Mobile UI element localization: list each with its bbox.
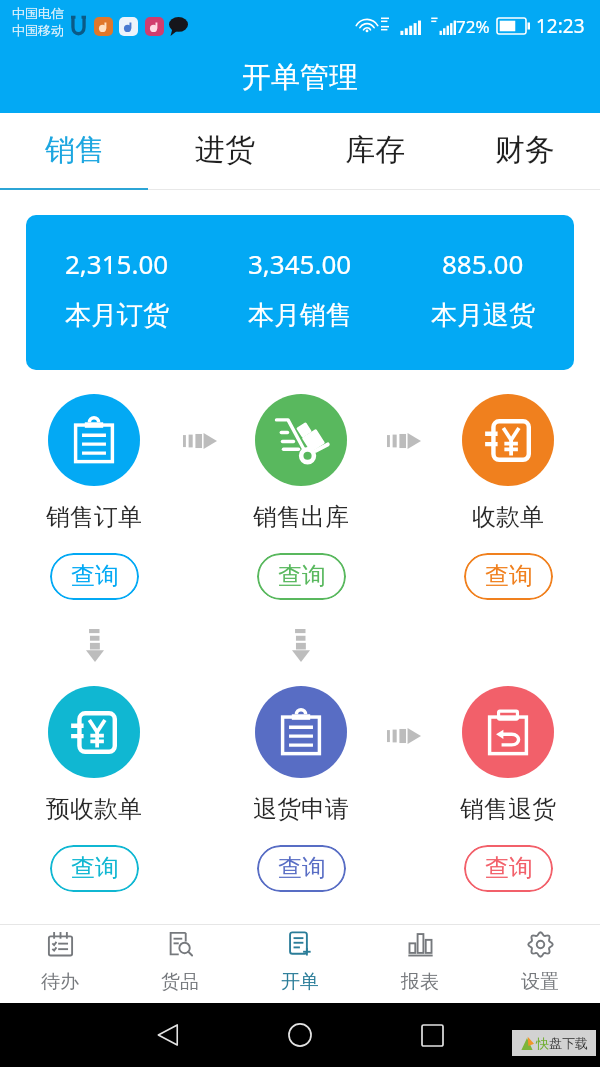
button[interactable]: Recents bbox=[410, 1013, 454, 1057]
staticText: 2,315.00 bbox=[65, 246, 169, 281]
staticText: 3,345.00 bbox=[248, 246, 352, 281]
button[interactable]: 财务 bbox=[450, 113, 600, 190]
button[interactable]: 销售出库 bbox=[225, 394, 377, 600]
staticText: 12:23 bbox=[536, 13, 585, 39]
button[interactable]: 销售订单 bbox=[18, 394, 170, 600]
button[interactable]: 查询 bbox=[464, 845, 553, 892]
staticText: 盘下载 bbox=[549, 1035, 588, 1051]
staticText: 销售订单 bbox=[46, 502, 142, 532]
staticText: 查询 bbox=[485, 561, 533, 591]
staticText: 中国电信 bbox=[12, 5, 64, 21]
staticText: 收款单 bbox=[472, 502, 544, 532]
button[interactable]: 货品 bbox=[120, 924, 240, 1003]
staticText: 查询 bbox=[485, 853, 533, 883]
button[interactable]: 待办 bbox=[0, 924, 120, 1003]
staticText: 设置 bbox=[521, 970, 559, 994]
staticText: 查询 bbox=[71, 561, 119, 591]
button[interactable]: 2,315.00 bbox=[26, 215, 574, 370]
staticText: 销售出库 bbox=[253, 502, 349, 532]
button[interactable]: 进货 bbox=[150, 113, 300, 190]
staticText: 开单 bbox=[281, 970, 319, 994]
staticText: 销售退货 bbox=[460, 794, 556, 824]
button[interactable]: 设置 bbox=[480, 924, 600, 1003]
staticText: 72% bbox=[456, 15, 490, 38]
button[interactable]: 销售退货 bbox=[432, 686, 584, 892]
button[interactable]: 退货申请 bbox=[225, 686, 377, 892]
staticText: 查询 bbox=[71, 853, 119, 883]
button[interactable]: 查询 bbox=[257, 553, 346, 600]
button[interactable]: 收款单 bbox=[432, 394, 584, 600]
staticText: 库存 bbox=[345, 131, 405, 169]
staticText: 销售 bbox=[45, 131, 105, 169]
staticText: 快 bbox=[536, 1035, 549, 1051]
button[interactable]: 查询 bbox=[50, 553, 139, 600]
staticText: 报表 bbox=[401, 970, 439, 994]
staticText: 本月销售 bbox=[248, 299, 352, 332]
button[interactable]: 查询 bbox=[257, 845, 346, 892]
button[interactable]: 库存 bbox=[300, 113, 450, 190]
button[interactable]: 销售 bbox=[0, 113, 150, 190]
staticText: 预收款单 bbox=[46, 794, 142, 824]
staticText: 待办 bbox=[41, 970, 79, 994]
staticText: 进货 bbox=[195, 131, 255, 169]
button[interactable]: 查询 bbox=[464, 553, 553, 600]
button[interactable]: 报表 bbox=[360, 924, 480, 1003]
staticText: 查询 bbox=[278, 853, 326, 883]
staticText: 查询 bbox=[278, 561, 326, 591]
button[interactable]: 开单 bbox=[240, 924, 360, 1003]
button[interactable]: Back bbox=[146, 1013, 190, 1057]
staticText: 本月退货 bbox=[431, 299, 535, 332]
staticText: 财务 bbox=[495, 131, 555, 169]
staticText: 中国移动 bbox=[12, 22, 64, 38]
button[interactable]: 预收款单 bbox=[18, 686, 170, 892]
staticText: 开单管理 bbox=[242, 59, 358, 96]
staticText: 885.00 bbox=[442, 246, 524, 281]
staticText: 货品 bbox=[161, 970, 199, 994]
button[interactable]: 查询 bbox=[50, 845, 139, 892]
button[interactable]: Home bbox=[278, 1013, 322, 1057]
staticText: 本月订货 bbox=[65, 299, 169, 332]
staticText: 退货申请 bbox=[253, 794, 349, 824]
